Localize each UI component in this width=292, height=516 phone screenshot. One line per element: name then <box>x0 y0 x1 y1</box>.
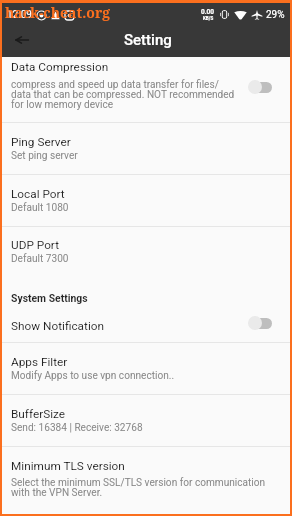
button[interactable]: Local Port <box>2 175 290 226</box>
staticText: 29% <box>266 9 285 21</box>
button[interactable]: Back <box>7 27 37 57</box>
staticText: UDP Port <box>11 238 59 252</box>
button[interactable]: Data Compression <box>2 57 290 122</box>
staticText: Setting <box>124 31 172 49</box>
button[interactable]: Minimum TLS version <box>2 447 290 512</box>
staticText: Select the minimum SSL/TLS version for c… <box>11 477 266 499</box>
staticText: Set ping server <box>11 150 78 162</box>
staticText: hack-cheat.org <box>5 3 111 22</box>
button[interactable]: Show Notification <box>2 311 290 342</box>
staticText: Local Port <box>11 187 65 201</box>
staticText: Modify Apps to use vpn connection.. <box>11 370 175 382</box>
staticText: compress and speed up data transfer for … <box>11 79 235 111</box>
staticText: Data Compression <box>11 60 109 74</box>
button[interactable]: Ping Server <box>2 123 290 174</box>
staticText: Default 1080 <box>11 202 69 214</box>
button[interactable]: UDP Port <box>2 227 290 278</box>
staticText: Show Notification <box>11 319 104 333</box>
staticText: 0.00 <box>201 8 215 16</box>
button[interactable]: Toggle <box>248 315 272 331</box>
staticText: Ping Server <box>11 135 71 149</box>
staticText: System Settings <box>11 292 88 304</box>
staticText: Minimum TLS version <box>11 459 125 473</box>
staticText: Apps Filter <box>11 355 68 369</box>
staticText: Send: 16384 | Receive: 32768 <box>11 422 143 434</box>
button[interactable]: Apps Filter <box>2 343 290 394</box>
staticText: KB/S <box>203 16 214 21</box>
staticText: BufferSize <box>11 407 66 421</box>
button[interactable]: BufferSize <box>2 395 290 446</box>
button[interactable]: Toggle <box>248 79 272 95</box>
staticText: 12:09 <box>7 9 32 21</box>
staticText: Default 7300 <box>11 253 69 265</box>
